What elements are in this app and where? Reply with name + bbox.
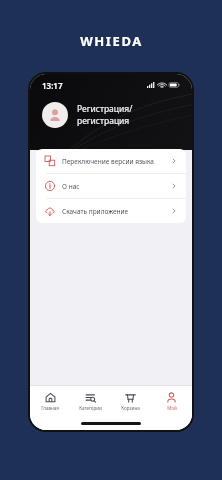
button[interactable]: Переключение версии языка (36, 149, 186, 173)
staticText: Скачать приложение (62, 207, 129, 216)
button[interactable]: Категории (70, 386, 110, 416)
staticText: Корзина (121, 405, 140, 411)
staticText: Переключение версии языка (62, 157, 154, 166)
staticText: WHIEDA (80, 32, 143, 50)
staticText: 13:17 (42, 80, 63, 91)
staticText: Главная (41, 405, 59, 411)
button[interactable]: Регистрация/регистрация (42, 102, 180, 128)
staticText: Категории (79, 405, 102, 411)
staticText: Регистрация/регистрация (77, 103, 180, 127)
button[interactable]: Мой (151, 386, 192, 416)
staticText: Мой (167, 405, 177, 411)
button[interactable]: Главная (30, 386, 70, 416)
button[interactable]: Корзина (110, 386, 151, 416)
button[interactable]: Скачать приложение (36, 199, 186, 223)
staticText: О нас (62, 182, 80, 191)
button[interactable]: О нас (36, 174, 186, 198)
